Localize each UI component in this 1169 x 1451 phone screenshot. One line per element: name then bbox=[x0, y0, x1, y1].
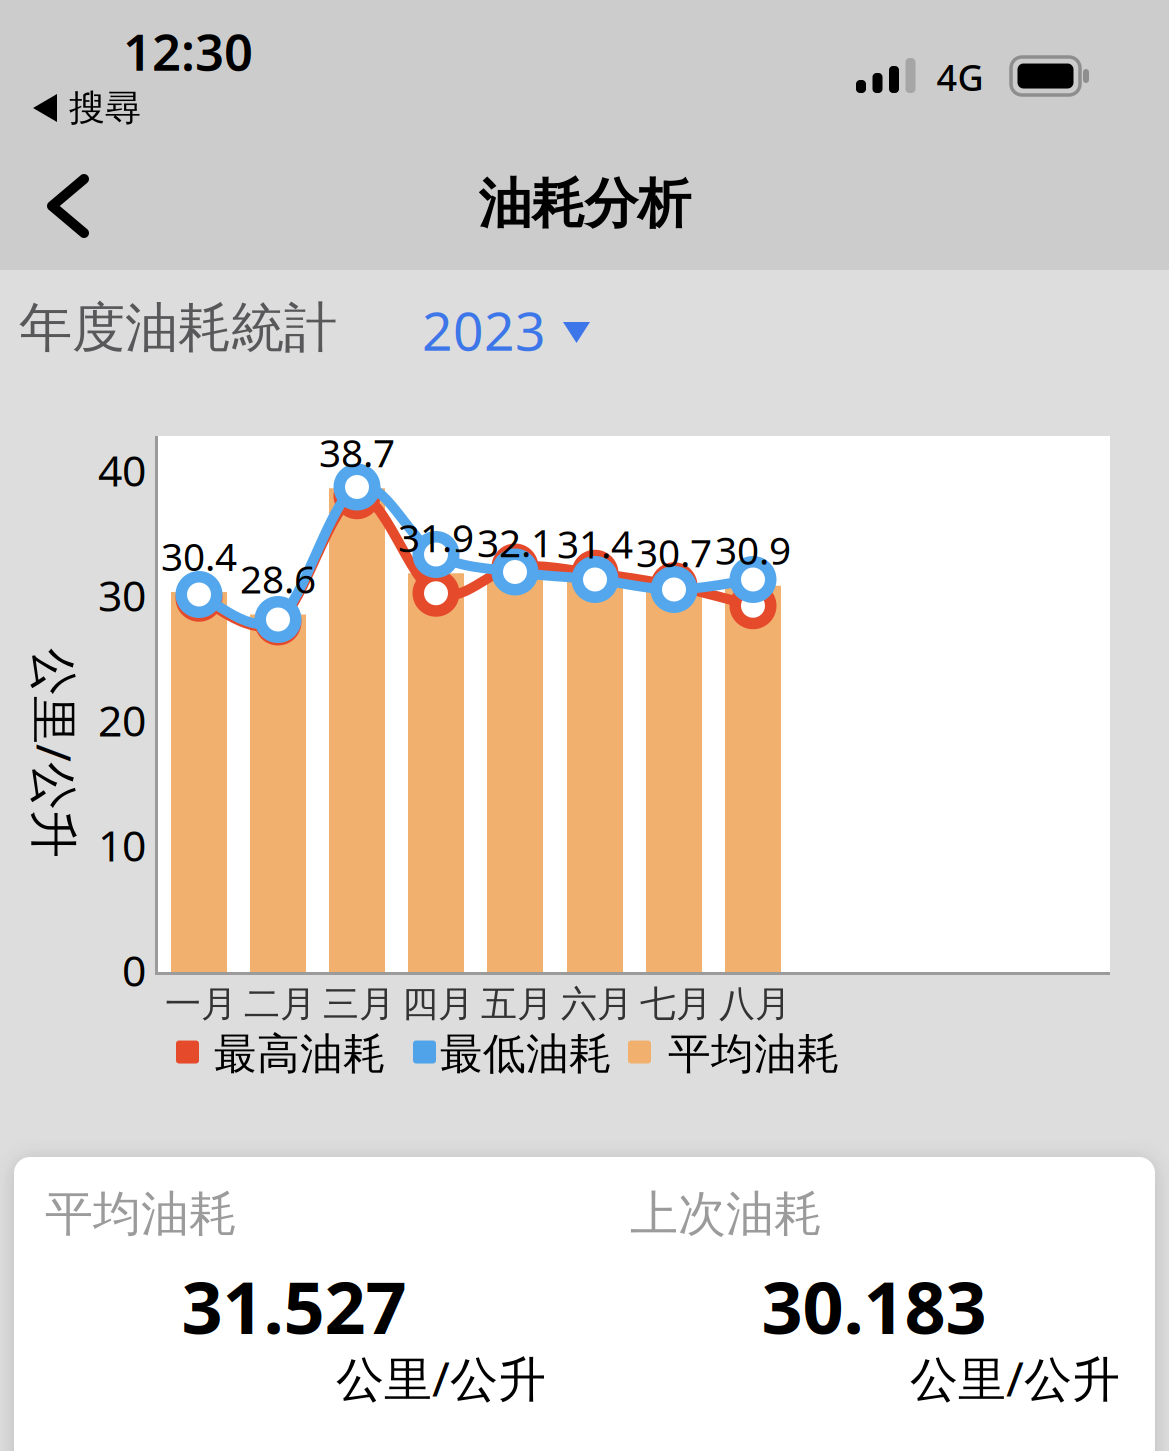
staticText: 4G bbox=[936, 53, 983, 101]
staticText: 平均油耗 bbox=[45, 1184, 237, 1243]
staticText: 30.183 bbox=[761, 1258, 986, 1354]
staticText: 六月 bbox=[561, 982, 633, 1026]
button[interactable]: 2023 bbox=[410, 290, 600, 370]
staticText: 20 bbox=[98, 692, 146, 748]
staticText: 31.527 bbox=[181, 1258, 406, 1354]
staticText: 最高油耗 bbox=[214, 1028, 386, 1080]
staticText: 0 bbox=[122, 942, 146, 998]
staticText: 油耗分析 bbox=[478, 171, 690, 237]
staticText: 40 bbox=[98, 442, 146, 498]
staticText: 公里/公升 bbox=[0, 721, 160, 785]
staticText: 三月 bbox=[323, 982, 395, 1026]
staticText: 31.4 bbox=[557, 518, 633, 569]
staticText: 38.7 bbox=[319, 427, 395, 478]
button[interactable]: Back bbox=[31, 161, 101, 251]
staticText: 10 bbox=[98, 817, 146, 873]
staticText: 30.7 bbox=[636, 527, 712, 578]
staticText: 平均油耗 bbox=[668, 1028, 840, 1080]
staticText: 公里/公升 bbox=[910, 1346, 1120, 1410]
staticText: 31.9 bbox=[398, 512, 474, 563]
staticText: 28.6 bbox=[240, 553, 316, 604]
staticText: 年度油耗統計 bbox=[19, 295, 337, 361]
staticText: 32.1 bbox=[477, 517, 553, 568]
staticText: 五月 bbox=[481, 982, 553, 1026]
staticText: 30.9 bbox=[715, 524, 791, 575]
staticText: 四月 bbox=[402, 982, 474, 1026]
staticText: 公里/公升 bbox=[336, 1346, 546, 1410]
staticText: 30 bbox=[98, 567, 146, 623]
staticText: 最低油耗 bbox=[440, 1028, 612, 1080]
staticText: 12:30 bbox=[123, 17, 253, 85]
staticText: 2023 bbox=[422, 295, 546, 365]
staticText: 八月 bbox=[719, 982, 791, 1026]
staticText: 七月 bbox=[640, 982, 712, 1026]
staticText: 二月 bbox=[244, 982, 316, 1026]
staticText: 搜尋 bbox=[69, 86, 141, 130]
staticText: 30.4 bbox=[161, 530, 237, 582]
staticText: 一月 bbox=[165, 982, 237, 1026]
staticText: 上次油耗 bbox=[630, 1184, 822, 1243]
